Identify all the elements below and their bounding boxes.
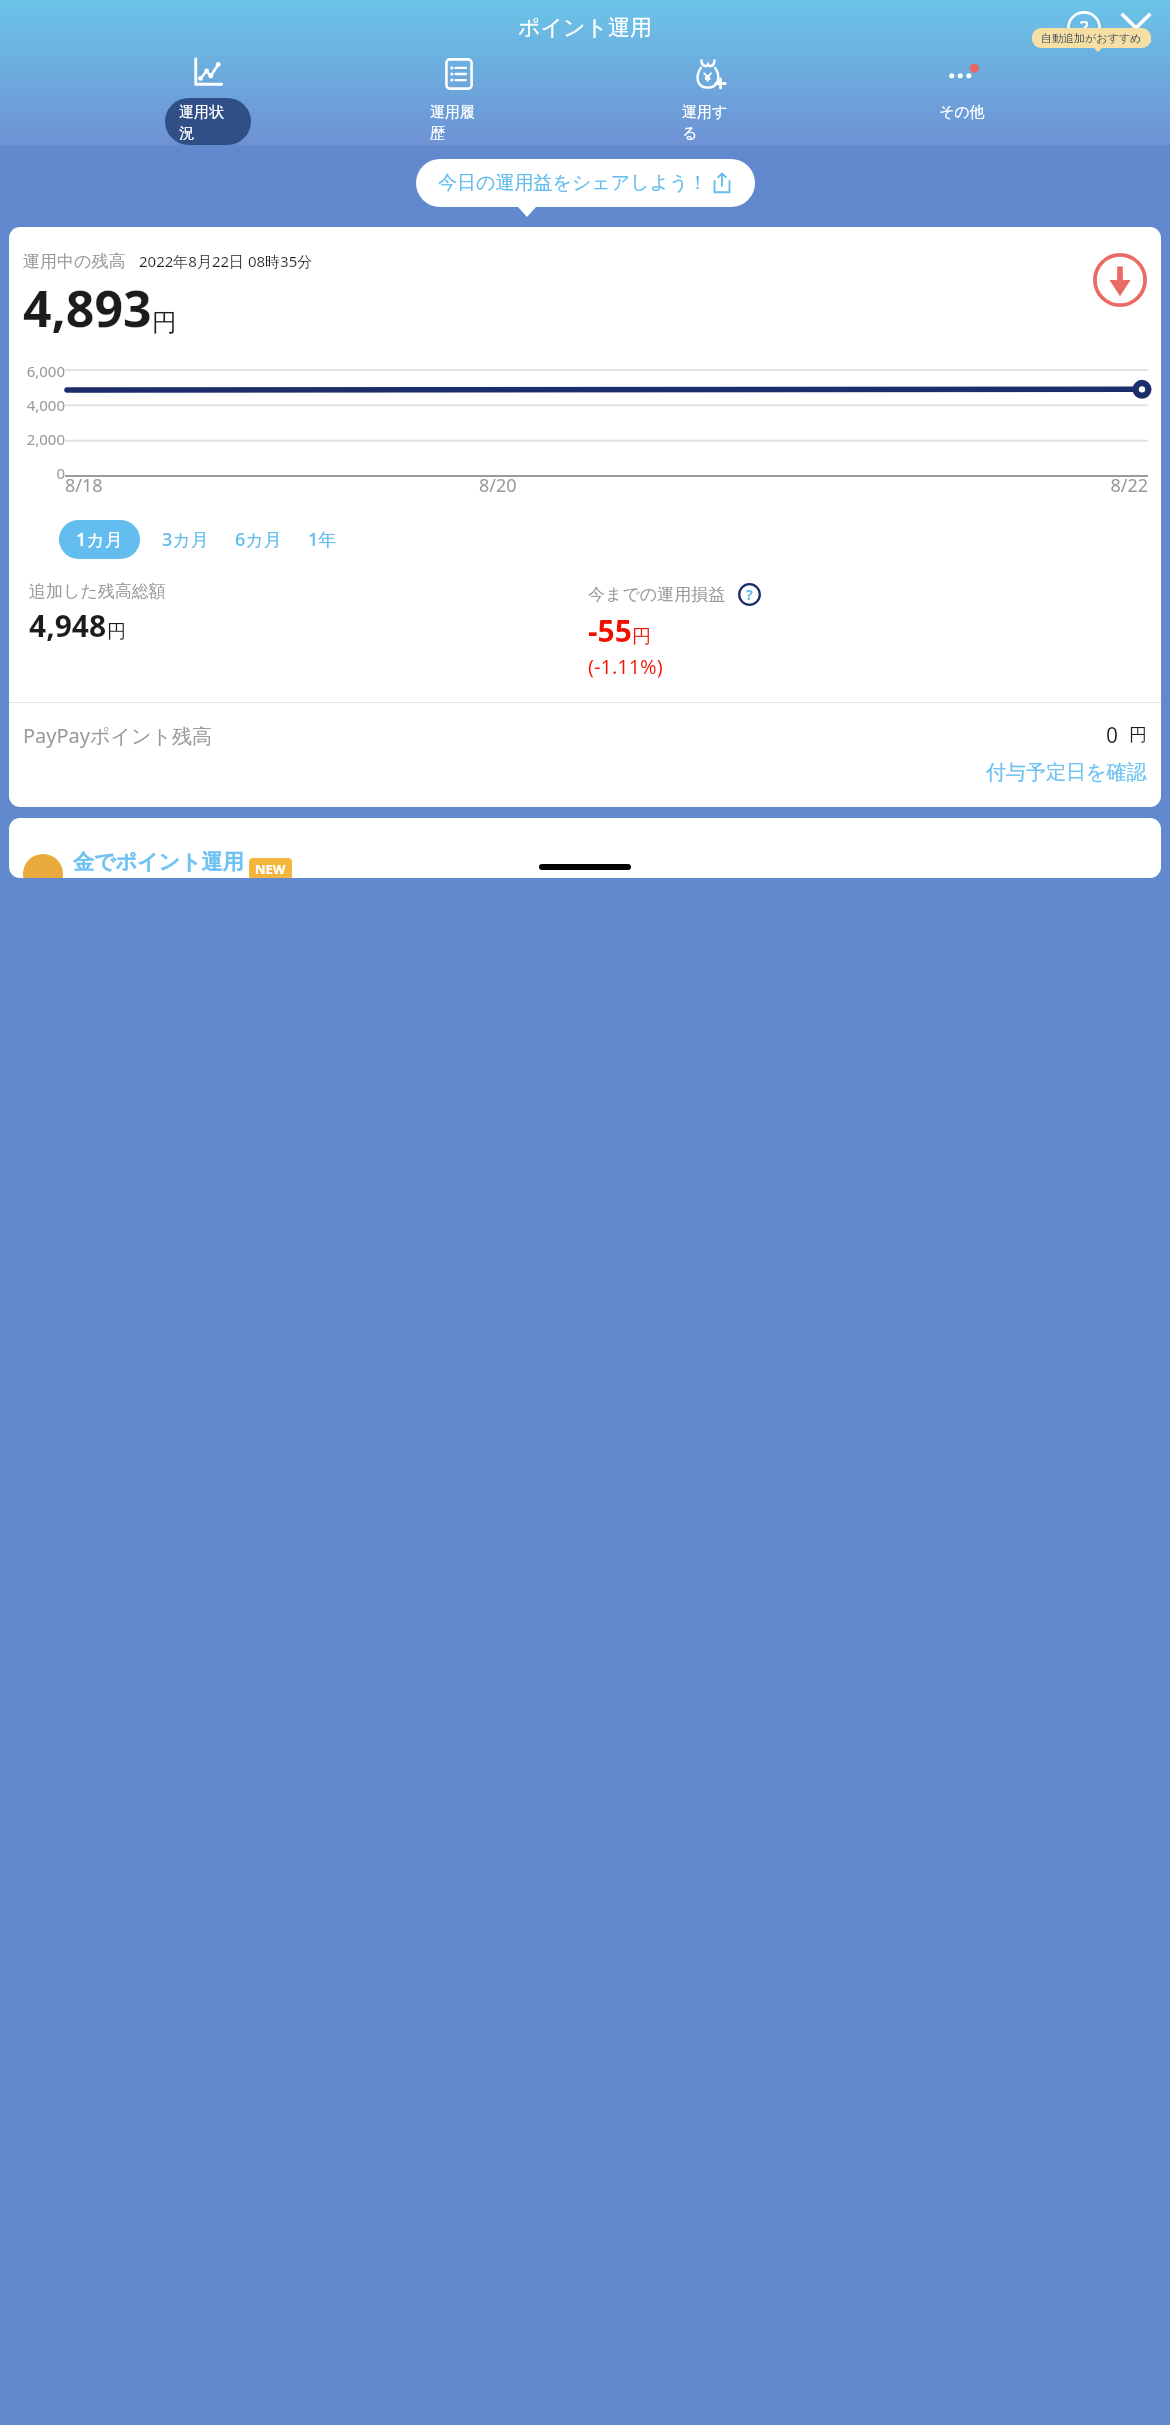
button[interactable]: 金でポイント運用: [9, 818, 1161, 878]
button[interactable]: 運用状況: [165, 48, 251, 145]
button[interactable]: 付与予定日を確認: [986, 760, 1147, 785]
staticText: 今日の運用益をシェアしよう！: [438, 171, 708, 195]
staticText: 4,893: [23, 274, 152, 342]
staticText: 追加した残高総額: [29, 581, 166, 602]
staticText: 自動追加がおすすめ: [1041, 31, 1142, 45]
button[interactable]: ヘルプ: [1064, 8, 1104, 48]
staticText: 円: [107, 620, 126, 644]
button[interactable]: PayPayポイント残高: [9, 703, 1161, 750]
staticText: 3カ月: [162, 527, 209, 552]
staticText: ?: [746, 585, 753, 604]
button[interactable]: その他: [919, 48, 1005, 127]
staticText: 4,000: [21, 395, 65, 415]
staticText: 運用履歴: [430, 103, 488, 140]
staticText: NEW: [255, 860, 286, 878]
other: 運用状況: [191, 57, 225, 91]
button[interactable]: 今日の運用益をシェアしよう！: [416, 159, 755, 207]
staticText: 6,000: [21, 361, 65, 381]
staticText: 運用する: [682, 103, 740, 140]
staticText: 8/20: [479, 473, 892, 498]
staticText: -55: [588, 610, 632, 651]
other: 運用履歴: [442, 57, 476, 91]
staticText: 2,000: [21, 429, 65, 449]
staticText: 6カ月: [235, 527, 282, 552]
staticText: 0: [1106, 721, 1119, 750]
staticText: ポイント運用: [518, 14, 653, 42]
staticText: 円: [152, 307, 177, 338]
button[interactable]: 運用する: [668, 48, 754, 145]
staticText: 0: [21, 463, 65, 483]
staticText: 8/22: [892, 473, 1148, 498]
other: 運用する: [694, 57, 728, 91]
button[interactable]: 閉じる: [1116, 8, 1156, 48]
button[interactable]: 運用履歴: [416, 48, 502, 145]
staticText: その他: [939, 103, 985, 122]
staticText: ?: [1080, 15, 1089, 41]
staticText: (-1.11%): [588, 653, 663, 680]
button[interactable]: 残高を引き出す: [1093, 253, 1147, 307]
staticText: PayPayポイント残高: [23, 722, 212, 749]
staticText: 8/18: [65, 473, 479, 498]
staticText: 円: [1129, 724, 1147, 747]
staticText: 1年: [308, 527, 337, 552]
staticText: 金でポイント運用: [73, 849, 244, 875]
button[interactable]: 6カ月: [231, 520, 286, 559]
other: その他: [945, 57, 979, 91]
button[interactable]: 3カ月: [158, 520, 213, 559]
button[interactable]: 1カ月: [59, 520, 140, 559]
staticText: 2022年8月22日 08時35分: [139, 251, 313, 271]
staticText: 4,948: [29, 605, 107, 646]
button[interactable]: 運用損益について: [736, 581, 762, 607]
staticText: 円: [632, 625, 651, 649]
staticText: 付与予定日を確認: [986, 760, 1147, 785]
staticText: 今までの運用損益: [588, 584, 726, 605]
staticText: 運用中の残高: [23, 251, 126, 272]
staticText: 1カ月: [76, 527, 123, 552]
button[interactable]: 1年: [304, 520, 341, 559]
staticText: 運用状況: [179, 103, 237, 140]
